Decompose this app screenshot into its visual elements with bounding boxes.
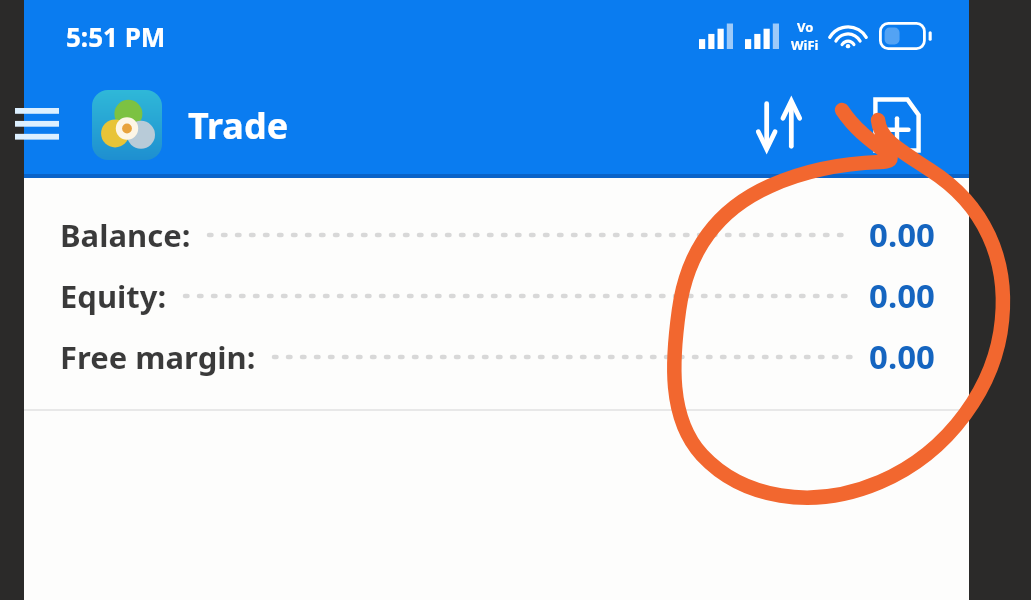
button[interactable]: Balance: [24,204,969,265]
button[interactable]: Sort [735,81,823,169]
button[interactable]: Equity: [24,265,969,326]
staticText: 0.00 [869,273,935,318]
staticText: Balance: [60,214,191,256]
staticText: 5:51 PM [66,19,166,54]
button[interactable]: Free margin: [24,326,969,387]
button[interactable]: New order [853,81,941,169]
staticText: WiFi [791,36,819,54]
staticText: Trade [188,101,289,150]
button[interactable]: Menu [8,96,66,154]
staticText: Equity: [60,275,167,317]
staticText: 0.00 [869,212,935,257]
staticText: Free margin: [60,336,256,378]
staticText: 0.00 [869,334,935,379]
staticText: Vo [797,18,814,36]
